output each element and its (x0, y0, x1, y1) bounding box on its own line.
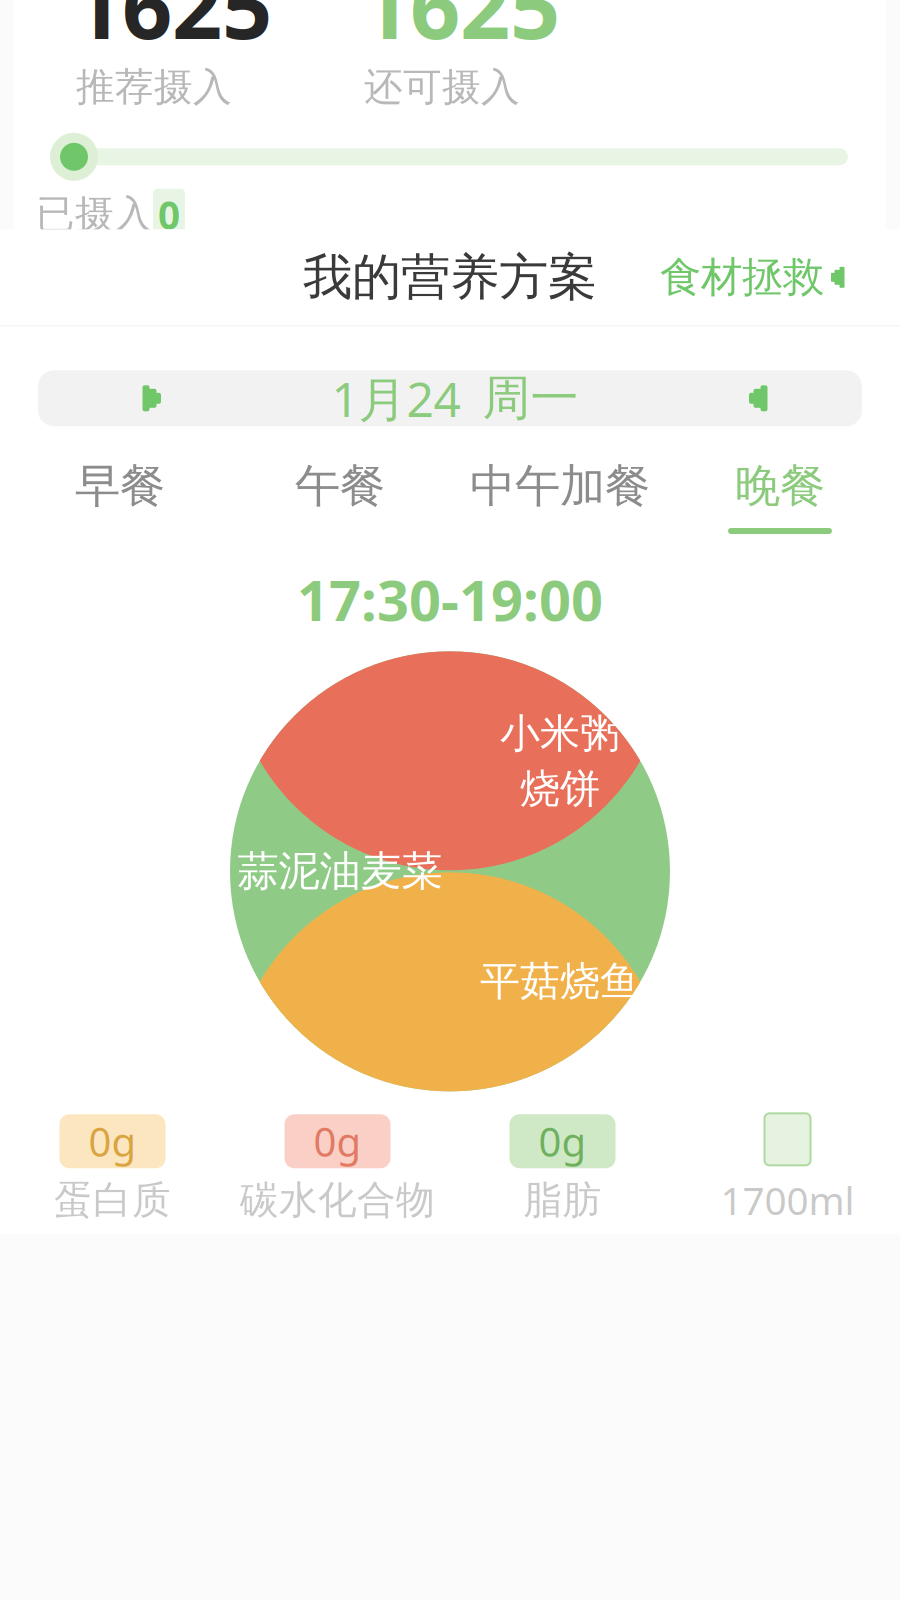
staticText: 中午加餐 (470, 458, 650, 514)
staticText: 脂肪 (523, 1176, 601, 1224)
staticText: 我的营养方案 (303, 247, 597, 308)
staticText: 0g (313, 1115, 361, 1168)
staticText: 午餐 (295, 458, 385, 514)
staticText: 烧饼 (520, 764, 600, 813)
button[interactable]: 食材拯救 (650, 244, 864, 311)
staticText: 还可摄入 (364, 63, 520, 111)
staticText: 蒜泥油麦菜 (237, 846, 442, 897)
staticText: 平菇烧鱼 (480, 957, 640, 1006)
staticText: 1625 (360, 0, 560, 63)
button[interactable]: 晚餐 (670, 452, 890, 540)
staticText: 晚餐 (735, 458, 825, 514)
staticText: 蛋白质 (54, 1176, 171, 1224)
staticText: 碳水化合物 (240, 1176, 435, 1224)
staticText: 1700ml (720, 1174, 854, 1226)
staticText: 0g (538, 1115, 586, 1168)
staticText: 小米粥 (500, 709, 620, 758)
staticText: 已摄入 (36, 191, 153, 238)
staticText: 17:30-19:00 (297, 562, 603, 636)
staticText: 食材拯救 (660, 252, 824, 303)
button[interactable]: 早餐 (10, 452, 230, 540)
staticText: 推荐摄入 (76, 63, 232, 111)
staticText: 1月24 (331, 366, 460, 430)
button[interactable]: 午餐 (230, 452, 450, 540)
staticText: 1625 (72, 0, 272, 63)
staticText: 0g (88, 1115, 136, 1168)
staticText: 早餐 (75, 458, 165, 514)
staticText: 0 (158, 189, 180, 240)
staticText: 周一 (482, 369, 578, 428)
button[interactable]: 中午加餐 (450, 452, 670, 540)
button[interactable]: 1月24 (38, 370, 862, 426)
